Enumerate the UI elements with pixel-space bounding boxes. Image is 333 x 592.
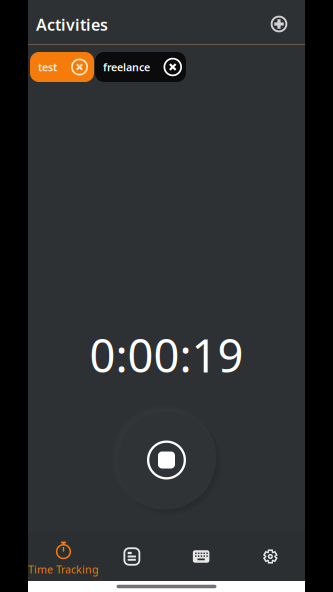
button[interactable]: Stop timer [114,408,218,512]
staticText: Time Tracking [28,562,99,576]
button[interactable]: freelance [95,52,186,82]
button[interactable]: Add activity [263,4,295,40]
staticText: test [38,60,57,74]
staticText: freelance [103,60,150,74]
staticText: 0:00:19 [89,325,243,385]
button[interactable]: test [30,52,94,82]
button[interactable]: Reports [97,532,166,581]
button[interactable]: Settings [236,532,305,581]
button[interactable]: Time Tracking [28,532,97,581]
staticText: Activities [36,14,108,35]
button[interactable]: Manual entry [166,532,236,581]
